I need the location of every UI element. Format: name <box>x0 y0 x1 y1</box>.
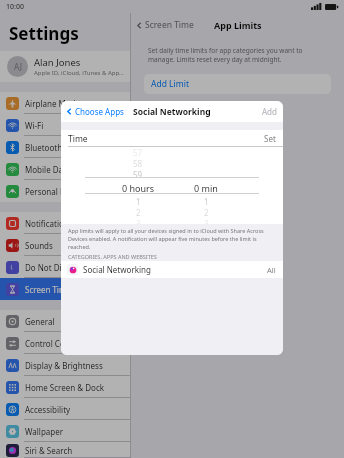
button[interactable]: Wi-Fi <box>0 114 131 136</box>
button[interactable]: Add <box>262 106 283 117</box>
staticText: 59 <box>133 169 143 180</box>
staticText: Wallpaper <box>25 426 64 437</box>
staticText: Home Screen & Dock <box>25 382 104 393</box>
staticText: 58 <box>133 158 143 169</box>
staticText: Display & Brightness <box>25 360 103 371</box>
staticText: Do Not Disturb <box>25 262 82 273</box>
staticText: Sounds <box>25 240 53 251</box>
staticText: Control Centre <box>25 338 80 349</box>
staticText: 2 <box>204 207 209 218</box>
button[interactable]: Do Not Disturb <box>0 256 131 278</box>
button[interactable]: Screen Time <box>136 19 194 31</box>
button[interactable]: Wallpaper <box>0 420 131 442</box>
staticText: Settings <box>9 22 79 45</box>
staticText: 1 <box>204 196 209 207</box>
staticText: 0 hours <box>122 182 155 194</box>
button[interactable]: Home Screen & Dock <box>0 376 131 398</box>
staticText: Choose Apps <box>75 106 124 117</box>
staticText: AJ <box>14 61 22 72</box>
staticText: Add Limit <box>151 78 189 90</box>
staticText: CATEGORIES, APPS AND WEBSITES <box>68 253 157 260</box>
staticText: Airplane Mode <box>25 98 81 109</box>
staticText: Mobile Data <box>25 164 71 175</box>
button[interactable]: Siri & Search <box>0 442 131 458</box>
staticText: Set <box>264 133 276 144</box>
button[interactable]: Personal Hotspot <box>0 180 131 202</box>
staticText: Add <box>262 106 277 117</box>
button[interactable]: Airplane Mode <box>0 92 131 114</box>
staticText: Siri & Search <box>25 445 73 456</box>
button[interactable]: Notifications <box>0 212 131 234</box>
staticText: 1 <box>136 196 141 207</box>
staticText: All <box>267 265 276 275</box>
staticText: 0 min <box>194 182 218 194</box>
button[interactable]: Mobile Data <box>0 158 131 180</box>
button[interactable]: Time <box>61 130 283 147</box>
staticText: Social Networking <box>133 106 211 118</box>
staticText: Bluetooth <box>25 142 63 153</box>
staticText: Time <box>68 133 88 145</box>
staticText: Apple ID, iCloud, iTunes & App St... <box>34 69 124 77</box>
button[interactable]: Screen Time <box>0 278 131 300</box>
staticText: Accessibility <box>25 404 71 415</box>
staticText: Set daily time limits for app categories… <box>148 46 327 64</box>
staticText: 57 <box>133 147 143 158</box>
staticText: 3 <box>204 218 209 224</box>
staticText: App Limits <box>214 19 262 31</box>
button[interactable]: General <box>0 310 131 332</box>
staticText: 3 <box>136 218 141 224</box>
button[interactable]: Display & Brightness <box>0 354 131 376</box>
button[interactable]: AJ <box>0 51 131 82</box>
staticText: 2 <box>136 207 141 218</box>
staticText: App limits will apply to all your device… <box>68 227 276 250</box>
staticText: Personal Hotspot <box>25 186 91 197</box>
button[interactable]: Control Centre <box>0 332 131 354</box>
staticText: Social Networking <box>83 264 151 275</box>
staticText: Screen Time <box>25 284 71 295</box>
button[interactable]: Bluetooth <box>0 136 131 158</box>
staticText: Screen Time <box>145 19 194 31</box>
staticText: 10:00 <box>6 2 24 12</box>
staticText: Notifications <box>25 218 73 229</box>
button[interactable]: Sounds <box>0 234 131 256</box>
button[interactable]: Choose Apps <box>66 106 124 117</box>
staticText: Wi-Fi <box>25 120 44 131</box>
button[interactable]: Accessibility <box>0 398 131 420</box>
staticText: Alan Jones <box>34 56 81 69</box>
staticText: General <box>25 316 55 327</box>
button[interactable]: Social Networking <box>61 261 283 278</box>
button[interactable]: Add Limit <box>144 74 331 94</box>
